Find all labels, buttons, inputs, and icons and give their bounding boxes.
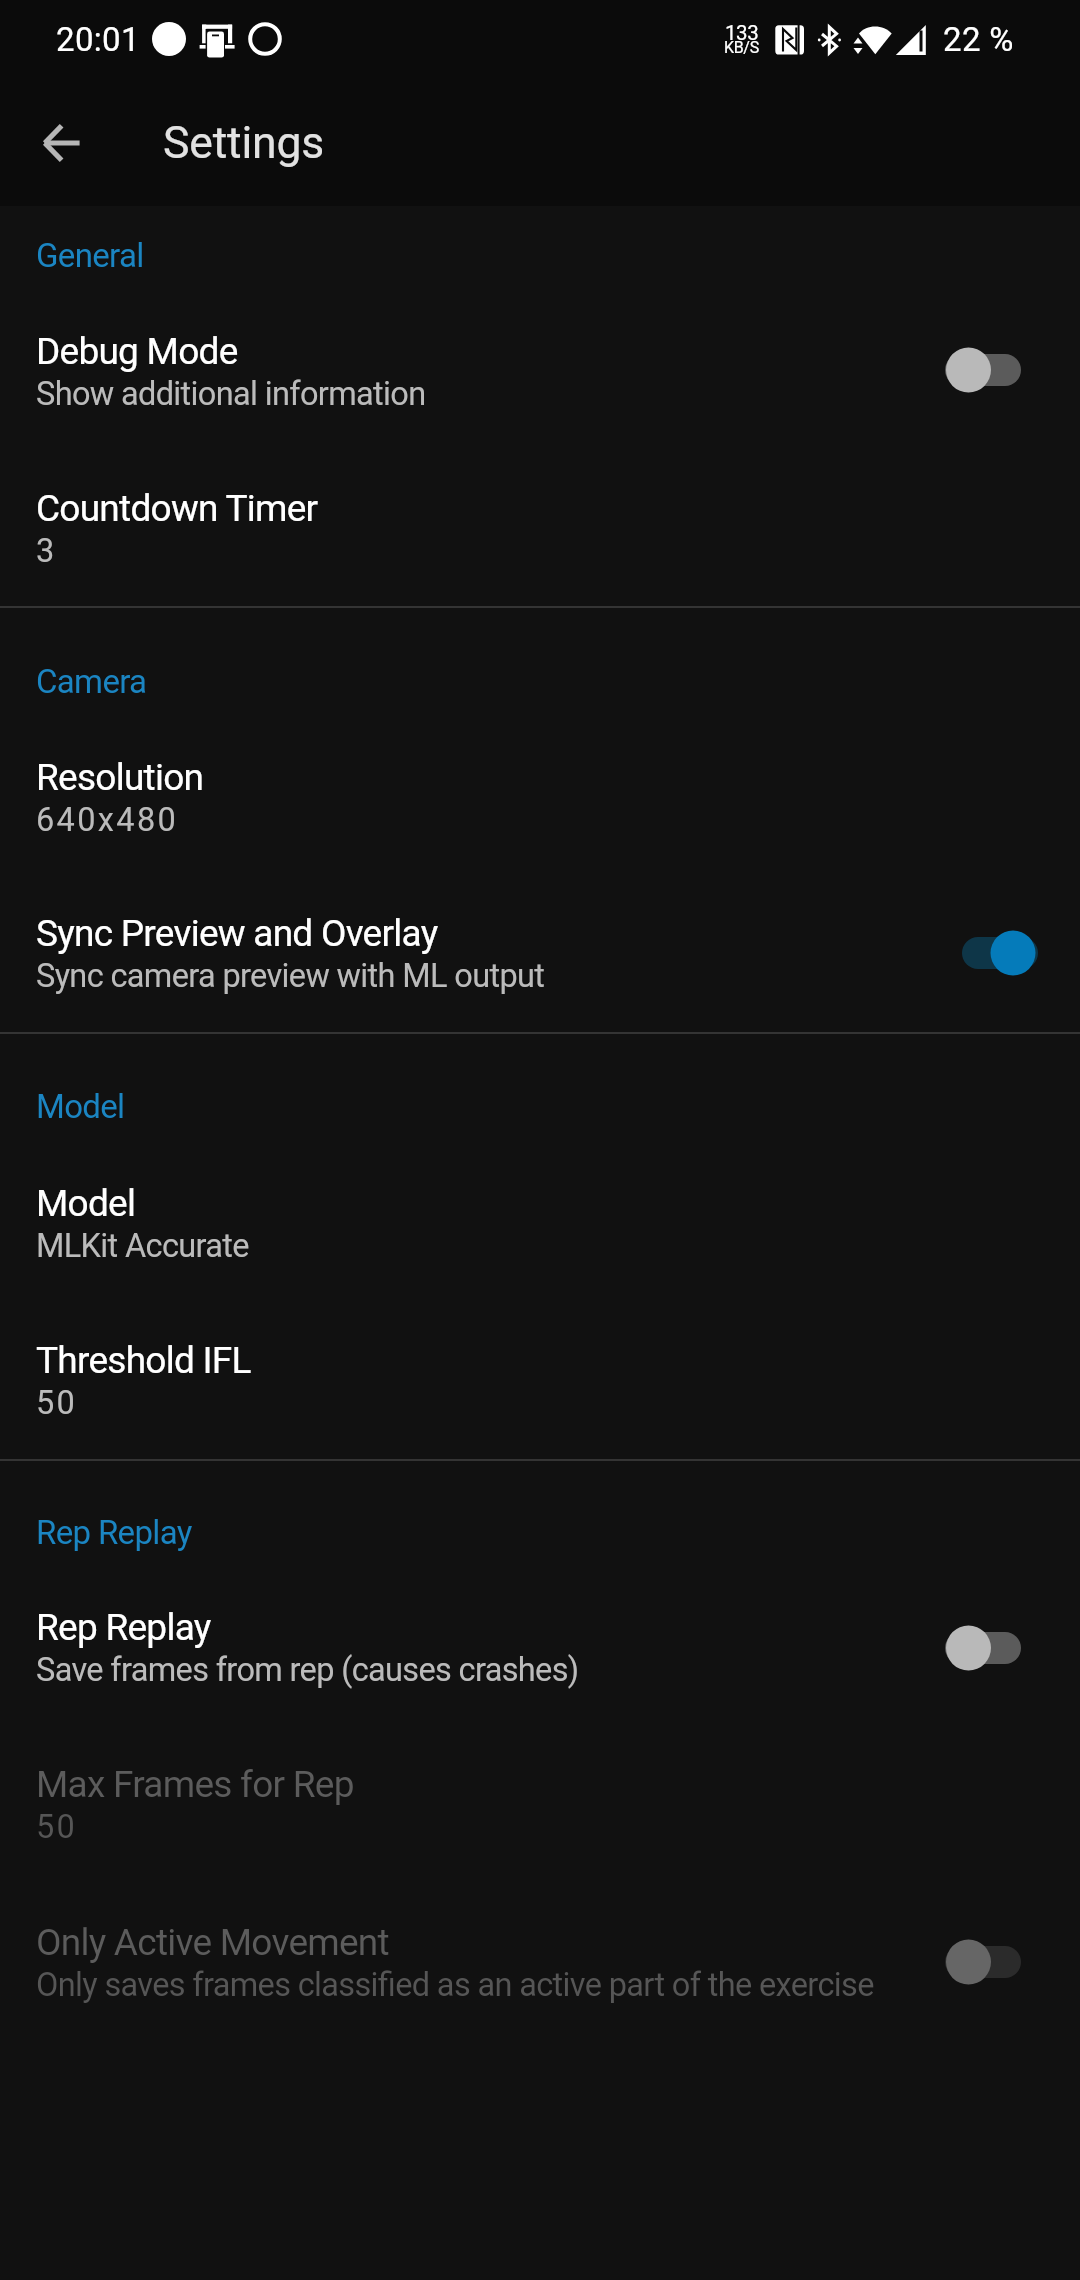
staticText: 3 bbox=[36, 532, 57, 570]
button[interactable]: Sync Preview and Overlay bbox=[0, 884, 1080, 1012]
button[interactable]: Max Frames for Rep bbox=[0, 1735, 1080, 1863]
staticText: Rep Replay bbox=[36, 1513, 192, 1552]
button[interactable]: Countdown Timer bbox=[0, 459, 1080, 587]
staticText: Resolution bbox=[36, 756, 204, 799]
staticText: Save frames from rep (causes crashes) bbox=[36, 1651, 579, 1689]
staticText: 20:01 bbox=[56, 20, 140, 59]
button[interactable]: Resolution bbox=[0, 728, 1080, 856]
button[interactable]: Toggle off bbox=[930, 1608, 1050, 1688]
button[interactable]: Toggle on bbox=[930, 913, 1050, 993]
button[interactable]: Back bbox=[18, 99, 106, 187]
staticText: KB/S bbox=[724, 38, 759, 57]
staticText: Camera bbox=[36, 662, 147, 701]
staticText: Max Frames for Rep bbox=[36, 1763, 354, 1806]
button[interactable]: Toggle off bbox=[930, 330, 1050, 410]
button[interactable]: Only Active Movement bbox=[0, 1893, 1080, 2021]
staticText: Countdown Timer bbox=[36, 487, 318, 530]
button[interactable]: Rep Replay bbox=[0, 1578, 1080, 1706]
staticText: MLKit Accurate bbox=[36, 1227, 249, 1265]
staticText: 50 bbox=[36, 1808, 78, 1846]
staticText: Show additional information bbox=[36, 375, 426, 413]
staticText: Sync camera preview with ML output bbox=[36, 957, 545, 995]
staticText: General bbox=[36, 236, 144, 275]
staticText: Debug Mode bbox=[36, 330, 238, 373]
staticText: Model bbox=[36, 1182, 136, 1225]
staticText: Sync Preview and Overlay bbox=[36, 912, 438, 955]
staticText: 22 % bbox=[943, 20, 1014, 59]
button[interactable]: Threshold IFL bbox=[0, 1311, 1080, 1439]
staticText: Threshold IFL bbox=[36, 1339, 251, 1382]
button[interactable]: Debug Mode bbox=[0, 302, 1080, 430]
staticText: 640x480 bbox=[36, 801, 179, 839]
staticText: Rep Replay bbox=[36, 1606, 211, 1649]
staticText: Only saves frames classified as an activ… bbox=[36, 1966, 874, 2004]
staticText: Model bbox=[36, 1087, 125, 1126]
staticText: 50 bbox=[36, 1384, 78, 1422]
button[interactable]: Model bbox=[0, 1154, 1080, 1282]
staticText: Settings bbox=[163, 117, 325, 169]
button[interactable]: Toggle off bbox=[930, 1922, 1050, 2002]
staticText: Only Active Movement bbox=[36, 1921, 389, 1964]
staticText: 133 bbox=[725, 21, 759, 45]
